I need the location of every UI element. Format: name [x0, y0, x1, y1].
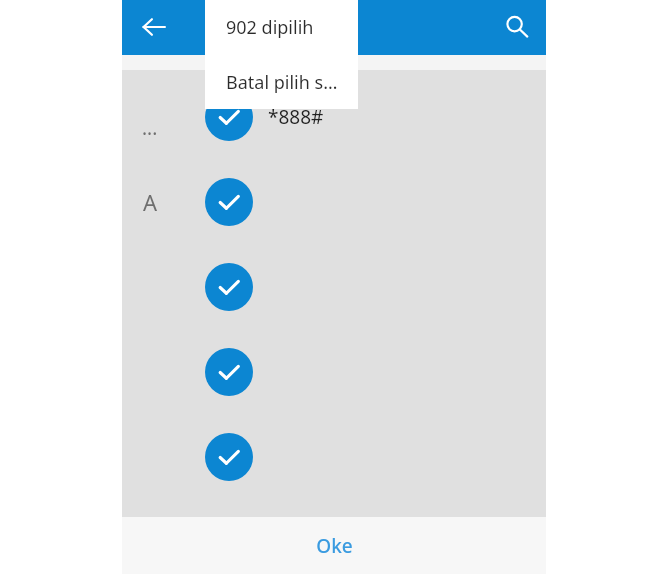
button[interactable]: Back	[130, 3, 178, 51]
button[interactable]: Batal pilih s…	[205, 55, 358, 109]
staticText: 902 dipilih	[226, 15, 314, 40]
staticText: A	[143, 187, 158, 217]
button[interactable]	[122, 178, 546, 226]
staticText: Batal pilih s…	[226, 70, 338, 95]
button[interactable]	[122, 433, 546, 481]
button[interactable]	[122, 263, 546, 311]
staticText: *888#	[268, 104, 324, 130]
button[interactable]: Search	[493, 3, 541, 51]
button[interactable]: 902 dipilih	[205, 0, 358, 55]
button[interactable]: *888#	[122, 93, 546, 141]
staticText: Oke	[316, 533, 353, 559]
button[interactable]: Oke	[122, 517, 546, 574]
staticText: ...	[142, 115, 158, 141]
button[interactable]	[122, 348, 546, 396]
